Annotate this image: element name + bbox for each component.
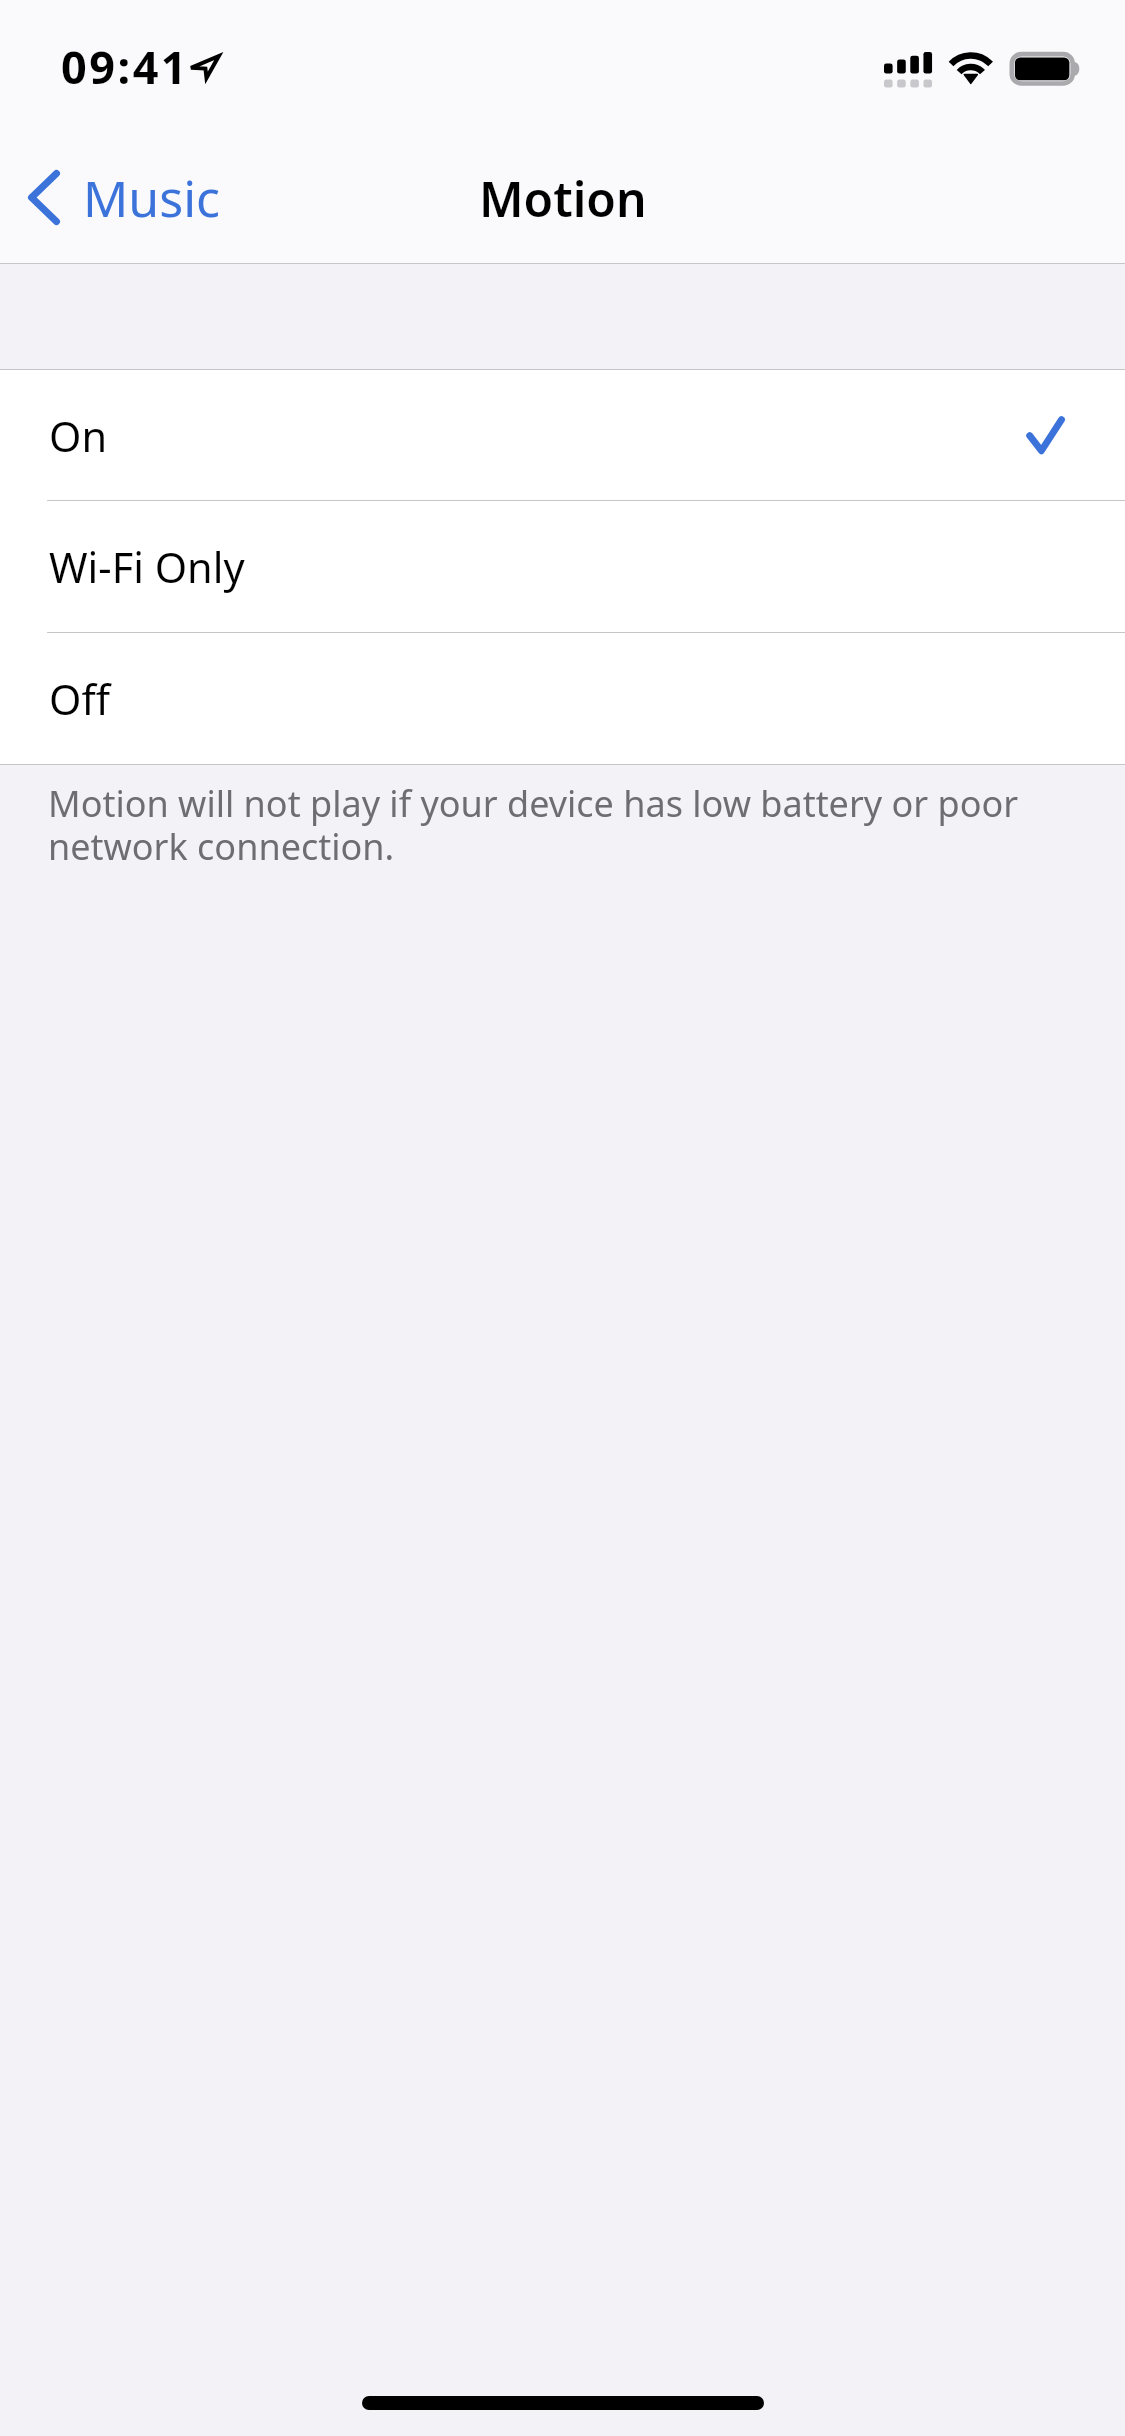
staticText: On <box>49 408 108 465</box>
staticText: Music <box>83 164 221 232</box>
button[interactable]: Off <box>0 633 1125 764</box>
staticText: Motion <box>479 166 647 231</box>
staticText: Wi-Fi Only <box>49 539 245 596</box>
button[interactable]: Wi-Fi Only <box>0 501 1125 632</box>
button[interactable]: Back to Music <box>0 132 241 264</box>
staticText: Off <box>49 671 110 728</box>
staticText: Motion will not play if your device has … <box>48 779 1064 871</box>
button[interactable]: On <box>0 370 1125 500</box>
staticText: 09:41 <box>61 36 190 97</box>
